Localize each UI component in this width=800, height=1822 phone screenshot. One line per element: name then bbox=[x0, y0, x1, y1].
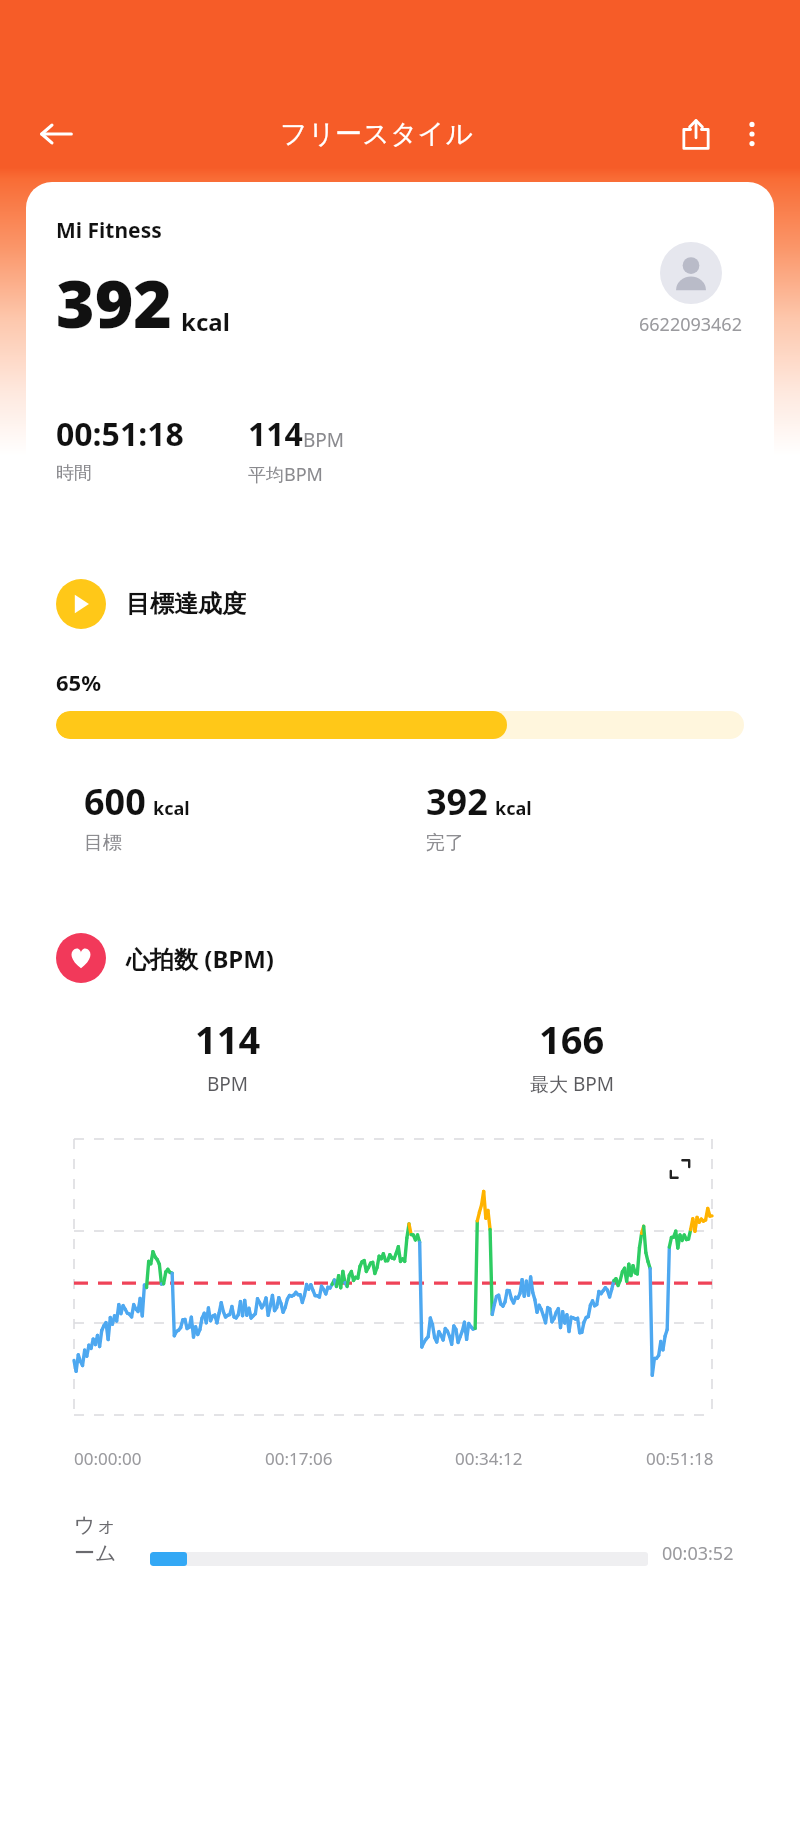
button[interactable]: 目標達成度 bbox=[26, 547, 774, 877]
staticText: 最大 BPM bbox=[530, 1071, 615, 1097]
staticText: 392 bbox=[56, 257, 173, 347]
staticText: 00:17:06 bbox=[265, 1447, 333, 1470]
staticText: 目標達成度 bbox=[126, 589, 246, 619]
staticText: kcal bbox=[153, 796, 190, 821]
button[interactable]: Fullscreen bbox=[658, 1147, 702, 1191]
button[interactable]: More options bbox=[724, 106, 780, 162]
staticText: 時間 bbox=[56, 462, 92, 485]
staticText: 166 bbox=[539, 1013, 605, 1065]
button[interactable]: Share bbox=[668, 106, 724, 162]
button[interactable]: Back bbox=[28, 106, 84, 162]
staticText: フリースタイル bbox=[280, 117, 473, 151]
staticText: 65% bbox=[56, 667, 102, 697]
staticText: 平均BPM bbox=[248, 462, 323, 487]
staticText: 600 bbox=[84, 777, 146, 826]
staticText: 114 bbox=[248, 412, 303, 456]
staticText: 00:00:00 bbox=[74, 1447, 142, 1470]
staticText: 00:51:18 bbox=[646, 1447, 714, 1470]
staticText: 目標 bbox=[84, 831, 122, 855]
button[interactable]: Profile bbox=[660, 242, 722, 304]
staticText: 完了 bbox=[426, 831, 464, 855]
staticText: 114 bbox=[195, 1013, 261, 1065]
staticText: BPM bbox=[207, 1071, 249, 1097]
button[interactable]: 心拍数 (BPM) bbox=[26, 899, 774, 1599]
staticText: 心拍数 (BPM) bbox=[126, 942, 275, 975]
staticText: ウォーム bbox=[74, 1512, 134, 1566]
staticText: BPM bbox=[303, 427, 345, 453]
staticText: 00:51:18 bbox=[56, 412, 184, 456]
staticText: Mi Fitness bbox=[56, 216, 162, 245]
staticText: 00:34:12 bbox=[455, 1447, 523, 1470]
staticText: 392 bbox=[426, 777, 488, 826]
staticText: kcal bbox=[181, 305, 230, 338]
staticText: kcal bbox=[495, 796, 532, 821]
button[interactable]: Mi Fitness bbox=[26, 182, 774, 525]
staticText: 00:03:52 bbox=[662, 1541, 734, 1566]
staticText: 6622093462 bbox=[639, 312, 742, 337]
